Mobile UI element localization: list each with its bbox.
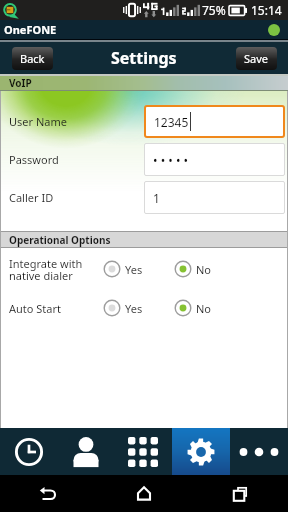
staticText: Settings bbox=[111, 47, 177, 69]
button[interactable]: Save bbox=[236, 47, 277, 70]
button[interactable]: Keypad bbox=[114, 428, 172, 475]
staticText: 15:14 bbox=[251, 2, 282, 18]
button[interactable]: No bbox=[174, 299, 212, 317]
button[interactable]: Recents bbox=[192, 475, 288, 512]
staticText: 75% bbox=[202, 2, 226, 18]
staticText: User Name bbox=[9, 114, 67, 129]
staticText: No bbox=[196, 262, 212, 277]
staticText: Yes bbox=[125, 301, 143, 316]
staticText: 1 bbox=[153, 190, 160, 206]
button[interactable]: Back bbox=[12, 47, 53, 70]
staticText: Auto Start bbox=[9, 301, 62, 316]
button[interactable]: Yes bbox=[103, 299, 143, 317]
staticText: 12345 bbox=[154, 114, 189, 130]
staticText: Integrate with native dialer bbox=[9, 256, 83, 283]
staticText: • • • • • bbox=[153, 152, 189, 168]
staticText: Yes bbox=[125, 262, 143, 277]
button[interactable]: Recent calls bbox=[0, 428, 57, 475]
button[interactable]: Contacts bbox=[57, 428, 114, 475]
button[interactable]: Home bbox=[96, 475, 192, 512]
button[interactable]: More bbox=[230, 428, 288, 475]
button[interactable]: 12345 bbox=[146, 107, 283, 136]
staticText: Password bbox=[9, 152, 59, 167]
staticText: Back bbox=[20, 51, 45, 66]
button[interactable]: Yes bbox=[103, 260, 143, 278]
staticText: No bbox=[196, 301, 212, 316]
staticText: Caller ID bbox=[9, 190, 54, 205]
button[interactable]: Settings bbox=[172, 428, 230, 475]
button[interactable]: 1 bbox=[145, 182, 284, 213]
button[interactable]: Back bbox=[0, 475, 96, 512]
button[interactable]: No bbox=[174, 260, 212, 278]
button[interactable]: • • • • • bbox=[145, 144, 284, 175]
staticText: OneFONE bbox=[4, 22, 57, 37]
staticText: VoIP bbox=[9, 76, 32, 90]
staticText: Save bbox=[244, 51, 269, 66]
staticText: Operational Options bbox=[9, 233, 111, 247]
